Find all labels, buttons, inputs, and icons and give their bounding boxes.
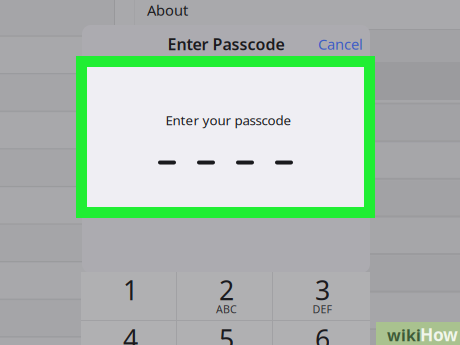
staticText: Enter Passcode bbox=[167, 33, 284, 55]
button[interactable]: 3 bbox=[275, 273, 370, 321]
button[interactable]: 6 bbox=[275, 322, 370, 345]
staticText: 4 bbox=[123, 321, 138, 345]
staticText: Enter your passcode bbox=[165, 111, 291, 129]
staticText: 2 bbox=[219, 272, 234, 308]
staticText: How bbox=[420, 323, 458, 345]
staticText: 6 bbox=[315, 321, 330, 345]
staticText: About bbox=[147, 0, 188, 20]
staticText: 3 bbox=[315, 272, 330, 308]
button[interactable]: About bbox=[147, 0, 217, 20]
button[interactable]: 1 bbox=[83, 273, 178, 321]
button[interactable]: 4 bbox=[83, 322, 178, 345]
button[interactable]: Cancel bbox=[311, 35, 363, 53]
staticText: ABC bbox=[216, 302, 237, 316]
button[interactable]: 2 bbox=[179, 273, 274, 321]
staticText: 1 bbox=[123, 272, 138, 308]
staticText: 5 bbox=[219, 321, 234, 345]
staticText: wiki bbox=[387, 324, 421, 345]
button[interactable]: 5 bbox=[179, 322, 274, 345]
staticText: DEF bbox=[312, 302, 332, 316]
staticText: Cancel bbox=[318, 34, 363, 54]
